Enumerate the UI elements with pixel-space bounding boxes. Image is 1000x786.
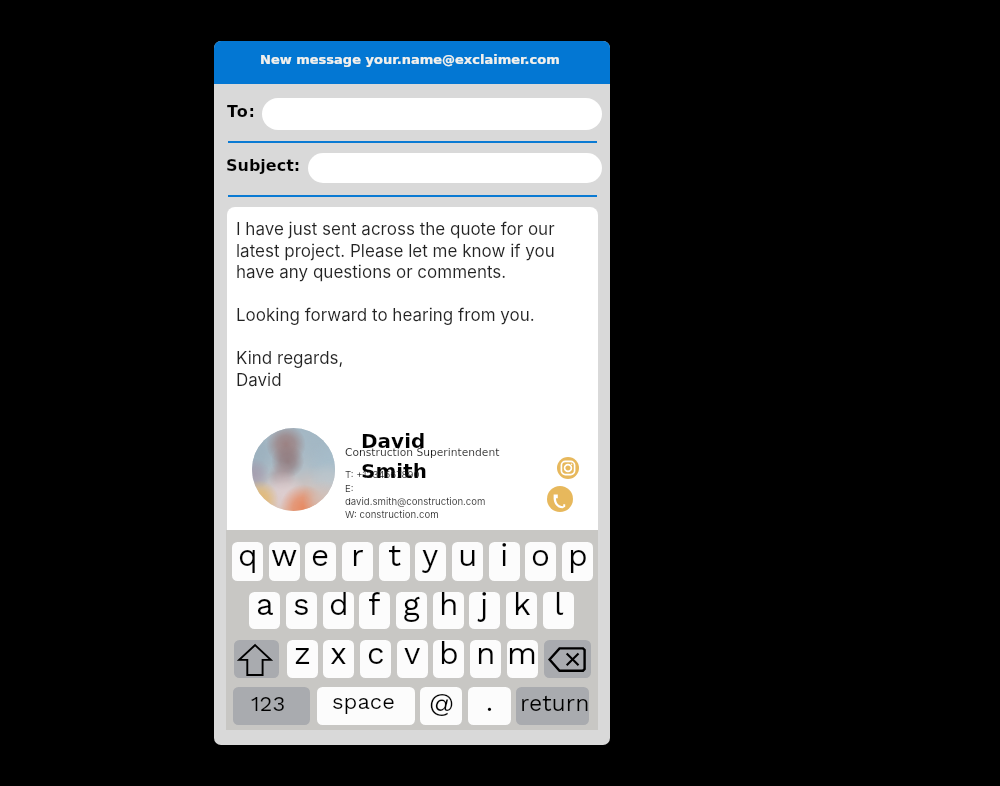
button[interactable]: x bbox=[323, 640, 354, 678]
button[interactable]: i bbox=[489, 542, 520, 581]
button[interactable]: c bbox=[360, 640, 391, 678]
staticText: Looking forward to hearing from you. bbox=[236, 305, 535, 326]
button[interactable]: f bbox=[359, 592, 390, 629]
staticText: b bbox=[439, 640, 459, 672]
staticText: d bbox=[329, 592, 349, 623]
button[interactable]: v bbox=[397, 640, 428, 678]
button[interactable]: Instagram bbox=[557, 457, 579, 479]
staticText: c bbox=[367, 640, 385, 672]
button[interactable]: z bbox=[287, 640, 318, 678]
staticText: Subject: bbox=[226, 156, 301, 175]
staticText: u bbox=[458, 542, 478, 574]
button[interactable]: u bbox=[452, 542, 483, 581]
button[interactable]: . bbox=[468, 687, 511, 725]
button[interactable]: I have just sent across the quote for ou… bbox=[227, 207, 598, 531]
button[interactable]: a bbox=[249, 592, 280, 629]
staticText: x bbox=[330, 640, 347, 672]
staticText: q bbox=[238, 542, 258, 574]
button[interactable]: j bbox=[469, 592, 500, 629]
staticText: return bbox=[520, 690, 589, 717]
staticText: t bbox=[388, 542, 402, 574]
button[interactable]: w bbox=[269, 542, 300, 581]
staticText: e bbox=[311, 542, 330, 574]
button[interactable]: @ bbox=[420, 687, 462, 725]
button[interactable] bbox=[262, 98, 602, 130]
button[interactable]: h bbox=[433, 592, 464, 629]
button[interactable]: d bbox=[323, 592, 354, 629]
staticText: v bbox=[404, 640, 421, 672]
button[interactable]: b bbox=[433, 640, 464, 678]
staticText: Construction Superintendent bbox=[345, 446, 500, 458]
staticText: To: bbox=[227, 102, 256, 121]
staticText: p bbox=[568, 542, 588, 574]
button[interactable]: p bbox=[562, 542, 593, 581]
staticText: l bbox=[554, 592, 564, 623]
button[interactable]: Shift bbox=[234, 640, 279, 678]
staticText: z bbox=[294, 640, 311, 672]
staticText: g bbox=[403, 592, 420, 623]
staticText: y bbox=[422, 542, 439, 574]
staticText: a bbox=[256, 592, 274, 623]
button[interactable]: space bbox=[317, 687, 415, 725]
staticText: @ bbox=[429, 687, 454, 717]
staticText: n bbox=[476, 640, 496, 672]
button[interactable]: t bbox=[379, 542, 410, 581]
staticText: h bbox=[439, 592, 459, 623]
button[interactable]: s bbox=[286, 592, 317, 629]
button[interactable]: r bbox=[342, 542, 373, 581]
button[interactable]: return bbox=[516, 687, 589, 725]
button[interactable]: o bbox=[525, 542, 556, 581]
staticText: T: +1234567890 E: david.smith@constructi… bbox=[345, 469, 486, 520]
staticText: s bbox=[293, 592, 310, 623]
staticText: I have just sent across the quote for ou… bbox=[236, 219, 555, 282]
staticText: r bbox=[351, 542, 364, 574]
button[interactable]: y bbox=[415, 542, 446, 581]
button[interactable]: k bbox=[506, 592, 537, 629]
button[interactable]: New message your.name@exclaimer.com bbox=[214, 41, 610, 84]
staticText: 123 bbox=[251, 691, 286, 717]
staticText: k bbox=[513, 592, 531, 623]
staticText: i bbox=[500, 542, 509, 574]
staticText: m bbox=[507, 640, 538, 672]
staticText: Kind regards, David bbox=[236, 348, 344, 390]
button[interactable]: 123 bbox=[233, 687, 310, 725]
staticText: f bbox=[368, 592, 381, 623]
button[interactable]: g bbox=[396, 592, 427, 629]
button[interactable] bbox=[308, 153, 602, 183]
staticText: space bbox=[332, 689, 395, 715]
staticText: . bbox=[486, 687, 493, 717]
button[interactable]: Call bbox=[547, 486, 573, 512]
staticText: New message your.name@exclaimer.com bbox=[260, 52, 560, 67]
staticText: o bbox=[531, 542, 550, 574]
button[interactable]: n bbox=[470, 640, 501, 678]
button[interactable]: Backspace bbox=[544, 640, 591, 678]
button[interactable]: l bbox=[543, 592, 574, 629]
button[interactable]: m bbox=[507, 640, 538, 678]
staticText: w bbox=[271, 542, 298, 574]
button[interactable]: e bbox=[305, 542, 336, 581]
staticText: David Smith bbox=[361, 429, 427, 483]
staticText: j bbox=[480, 592, 489, 623]
button[interactable]: q bbox=[232, 542, 263, 581]
